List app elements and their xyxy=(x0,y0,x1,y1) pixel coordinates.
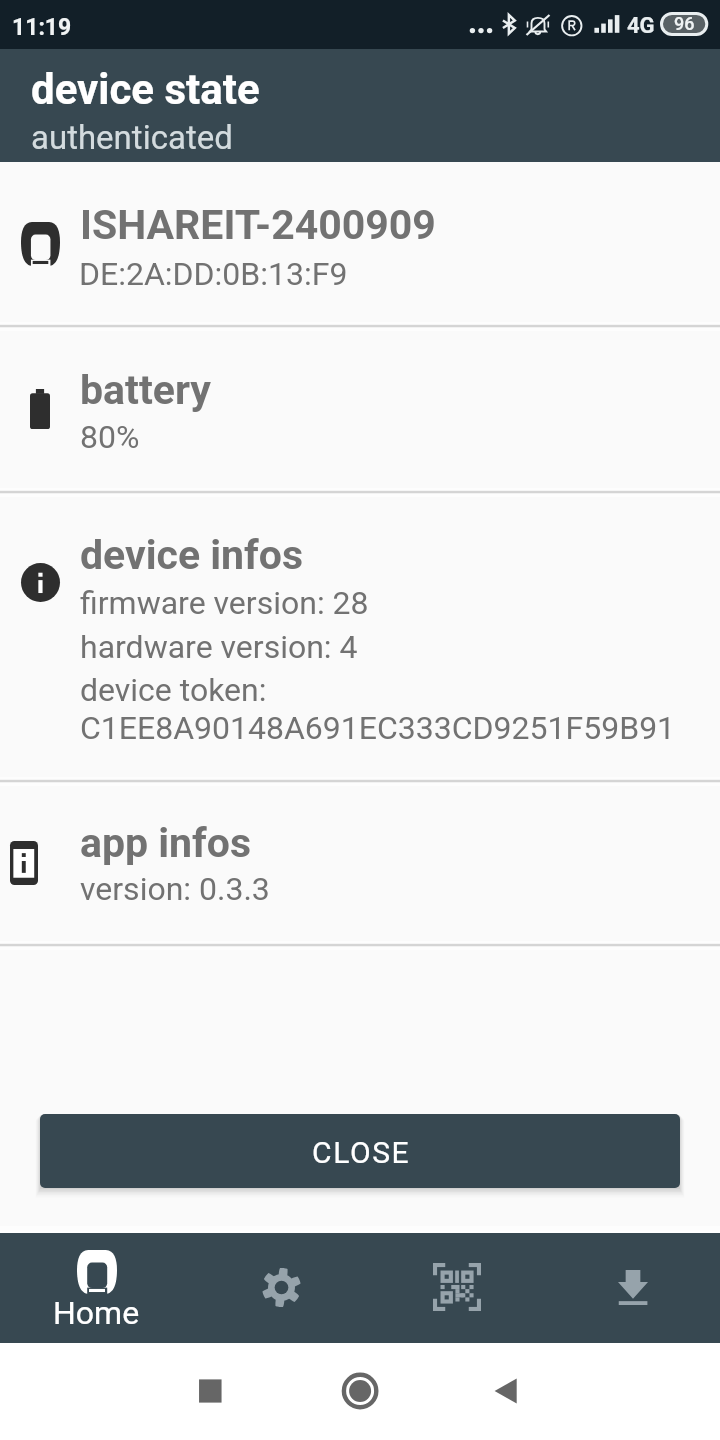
staticText: 80% xyxy=(80,418,140,456)
button[interactable]: ISHAREIT-2400909 xyxy=(0,162,720,325)
button[interactable]: Scan QR code xyxy=(369,1233,545,1343)
button[interactable]: Downloads xyxy=(545,1233,720,1343)
button[interactable]: Home xyxy=(0,1233,193,1343)
staticText: CLOSE xyxy=(312,1135,411,1170)
staticText: device infos xyxy=(80,531,303,579)
button[interactable]: device infos xyxy=(0,492,720,780)
staticText: 11:19 xyxy=(12,14,72,41)
staticText: battery xyxy=(80,366,211,414)
button[interactable]: app infos xyxy=(0,781,720,944)
staticText: Home xyxy=(53,1294,140,1332)
staticText: 4G xyxy=(627,13,655,39)
staticText: C1EE8A90148A691EC333CD9251F59B91 xyxy=(80,709,676,747)
button[interactable]: CLOSE xyxy=(40,1114,680,1188)
staticText: firmware version: 28 xyxy=(80,584,369,622)
staticText: device state xyxy=(31,65,260,114)
staticText: app infos xyxy=(80,819,251,867)
staticText: 96 xyxy=(674,13,695,34)
staticText: version: 0.3.3 xyxy=(80,870,270,908)
button[interactable]: Settings xyxy=(193,1233,369,1343)
staticText: authenticated xyxy=(31,118,233,157)
button[interactable]: battery xyxy=(0,326,720,491)
staticText: hardware version: 4 xyxy=(80,628,358,666)
staticText: DE:2A:DD:0B:13:F9 xyxy=(79,255,348,293)
staticText: ISHAREIT-2400909 xyxy=(80,201,436,249)
staticText: device token: xyxy=(80,671,267,709)
